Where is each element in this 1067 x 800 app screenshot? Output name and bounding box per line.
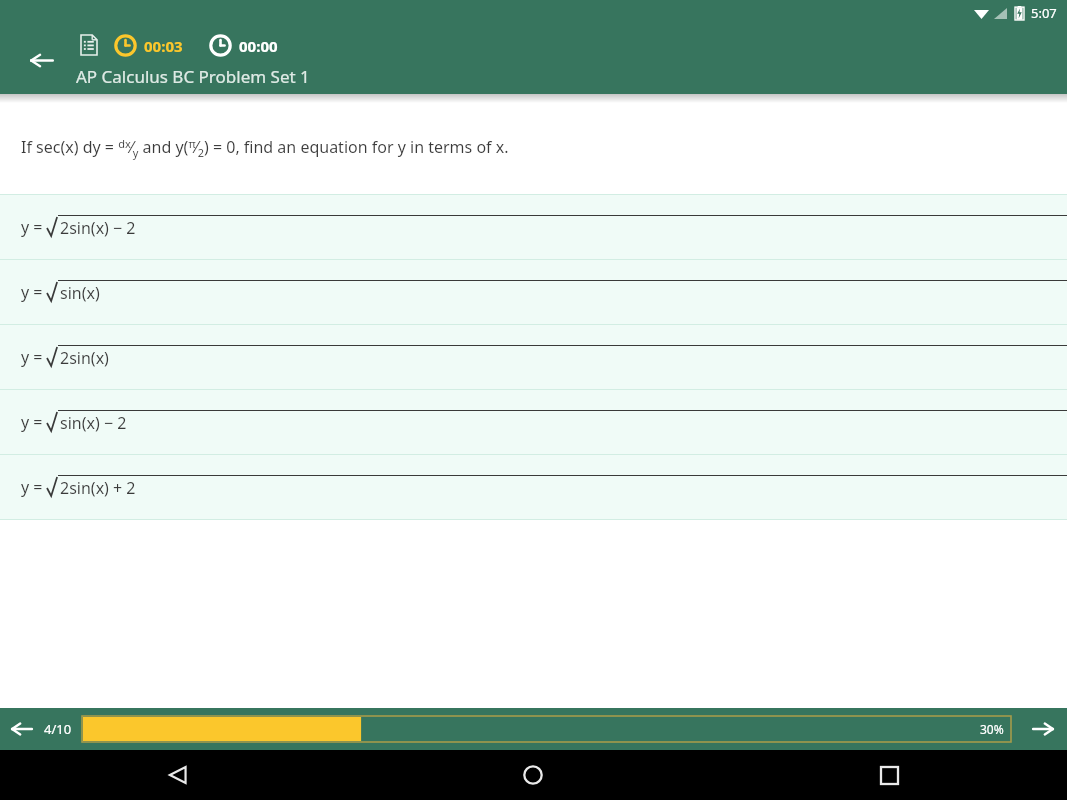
staticText: 2sin(x) + 2 [60,477,136,499]
button[interactable]: y = [0,195,1067,259]
staticText: 30% [980,721,1004,737]
button[interactable]: Previous question [0,708,44,750]
staticText: If sec(x) dy = dx⁄y and y(π⁄2) = 0, find… [21,136,509,160]
staticText: y = [21,476,47,498]
staticText: 00:00 [239,36,278,56]
button[interactable]: Home [355,750,711,800]
staticText: AP Calculus BC Problem Set 1 [76,65,310,88]
button[interactable]: Back [20,38,64,82]
button[interactable]: y = [0,390,1067,454]
staticText: sin(x) [60,282,100,304]
staticText: y = [21,216,47,238]
button[interactable]: 00:03 [114,34,183,57]
button[interactable]: Next question [1019,708,1067,750]
staticText: 2sin(x) − 2 [60,217,136,239]
button[interactable]: y = [0,260,1067,324]
staticText: 00:03 [144,36,183,56]
staticText: sin(x) − 2 [60,412,127,434]
button[interactable]: 00:00 [209,34,278,57]
button[interactable]: y = [0,325,1067,389]
button[interactable]: y = [0,455,1067,519]
staticText: 2sin(x) [60,347,109,369]
button[interactable]: Back [0,750,355,800]
staticText: y = [21,346,47,368]
button[interactable]: Problem list [76,32,102,58]
staticText: 5:07 [1031,4,1057,22]
staticText: y = [21,411,47,433]
staticText: y = [21,281,47,303]
staticText: 4/10 [44,720,72,738]
button[interactable]: Recents [711,750,1067,800]
